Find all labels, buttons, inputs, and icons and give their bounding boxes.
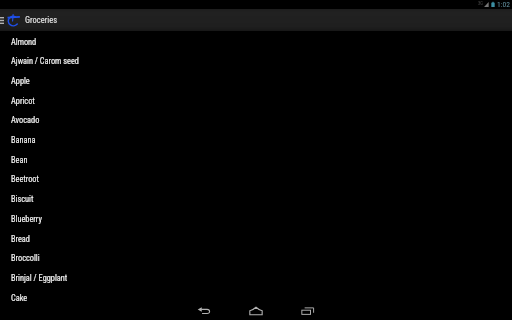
button[interactable]: Recent apps [292, 294, 324, 320]
button[interactable]: Banana [0, 130, 512, 150]
staticText: Broccolli [11, 253, 40, 263]
staticText: Groceries [25, 15, 58, 25]
staticText: Almond [11, 37, 37, 47]
button[interactable]: Home [240, 294, 272, 320]
button[interactable]: Apple [0, 71, 512, 91]
staticText: Bread [11, 234, 30, 244]
staticText: Cake [11, 293, 28, 303]
staticText: Banana [11, 135, 36, 145]
button[interactable]: Back [188, 294, 220, 320]
button[interactable]: Avocado [0, 110, 512, 130]
staticText: Blueberry [11, 214, 42, 224]
button[interactable]: Bread [0, 229, 512, 249]
button[interactable]: Bean [0, 150, 512, 170]
staticText: Bean [11, 155, 28, 165]
button[interactable]: Biscuit [0, 189, 512, 209]
button[interactable]: Broccolli [0, 248, 512, 268]
staticText: Brinjal / Eggplant [11, 273, 68, 283]
staticText: Biscuit [11, 194, 34, 204]
button[interactable]: Beetroot [0, 169, 512, 189]
button[interactable]: Brinjal / Eggplant [0, 268, 512, 288]
staticText: 3G [478, 1, 483, 6]
staticText: 1:02 [497, 0, 510, 9]
staticText: Beetroot [11, 174, 39, 184]
button[interactable]: Blueberry [0, 209, 512, 229]
staticText: Ajwain / Carom seed [11, 56, 79, 66]
staticText: Avocado [11, 115, 40, 125]
button[interactable]: Almond [0, 32, 512, 52]
staticText: Apple [11, 76, 30, 86]
button[interactable]: Cake [0, 288, 512, 308]
button[interactable]: Open navigation drawer [0, 9, 6, 31]
staticText: Apricot [11, 96, 35, 106]
button[interactable]: Apricot [0, 91, 512, 111]
button[interactable]: Ajwain / Carom seed [0, 51, 512, 71]
